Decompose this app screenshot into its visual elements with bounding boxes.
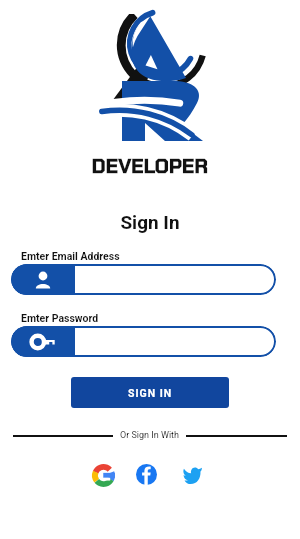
button[interactable]: Sign in with Twitter bbox=[183, 465, 202, 484]
staticText: Or Sign In With bbox=[120, 430, 179, 441]
button[interactable] bbox=[11, 326, 276, 357]
button[interactable]: Sign in with Google bbox=[92, 464, 115, 487]
button[interactable] bbox=[11, 264, 276, 295]
button[interactable]: Sign in with Facebook bbox=[136, 464, 157, 485]
staticText: Emter Password bbox=[21, 312, 99, 324]
staticText: DEVELOPER bbox=[0, 153, 300, 179]
staticText: SIGN IN bbox=[128, 387, 173, 399]
staticText: Sign In bbox=[0, 211, 300, 233]
button[interactable]: SIGN IN bbox=[71, 377, 229, 408]
staticText: Emter Email Address bbox=[21, 250, 120, 262]
